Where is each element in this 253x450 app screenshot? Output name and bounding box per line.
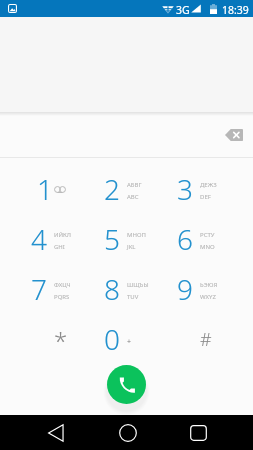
button[interactable]: 4 — [17, 214, 90, 264]
button[interactable]: 2 — [90, 164, 163, 214]
staticText: ДЕЖЗ — [200, 181, 217, 189]
button[interactable]: Home — [106, 415, 150, 450]
staticText: ФХЦЧ — [54, 281, 71, 289]
staticText: JKL — [127, 243, 136, 251]
button[interactable]: # — [163, 314, 236, 364]
staticText: ABC — [127, 193, 139, 201]
button[interactable]: Back — [34, 415, 78, 450]
button[interactable]: 8 — [90, 264, 163, 314]
staticText: ЬЭЮЯ — [200, 281, 218, 289]
button[interactable]: 5 — [90, 214, 163, 264]
staticText: 9 — [177, 270, 193, 308]
staticText: 8 — [104, 270, 120, 308]
button[interactable]: Call — [107, 365, 146, 404]
button[interactable]: 3 — [163, 164, 236, 214]
staticText: 7 — [31, 270, 47, 308]
staticText: 3G — [176, 3, 190, 17]
staticText: МНОП — [127, 231, 146, 239]
staticText: ИЙКЛ — [54, 231, 72, 239]
staticText: 4 — [31, 220, 47, 258]
staticText: ШЩЪЫ — [127, 281, 149, 289]
staticText: 1 — [37, 170, 53, 208]
button[interactable]: 6 — [163, 214, 236, 264]
staticText: 3 — [177, 170, 193, 208]
staticText: MNO — [200, 243, 215, 251]
button[interactable]: 0 — [90, 314, 163, 364]
button[interactable]: 7 — [17, 264, 90, 314]
button[interactable]: * — [17, 314, 90, 364]
staticText: GHI — [54, 243, 65, 251]
staticText: 0 — [104, 320, 120, 358]
staticText: + — [127, 337, 132, 347]
button[interactable]: Recent apps — [176, 415, 220, 450]
staticText: 2 — [104, 170, 120, 208]
staticText: 5 — [104, 220, 120, 258]
staticText: АБВГ — [127, 181, 142, 189]
staticText: 6 — [177, 220, 193, 258]
staticText: DEF — [200, 193, 211, 201]
staticText: РСТУ — [200, 231, 215, 239]
staticText: TUV — [127, 293, 139, 301]
button[interactable]: 9 — [163, 264, 236, 314]
staticText: 18:39 — [222, 3, 249, 17]
staticText: PQRS — [54, 293, 70, 301]
button[interactable]: 1 — [17, 164, 90, 214]
button[interactable]: Backspace — [219, 120, 249, 150]
staticText: WXYZ — [200, 293, 216, 301]
